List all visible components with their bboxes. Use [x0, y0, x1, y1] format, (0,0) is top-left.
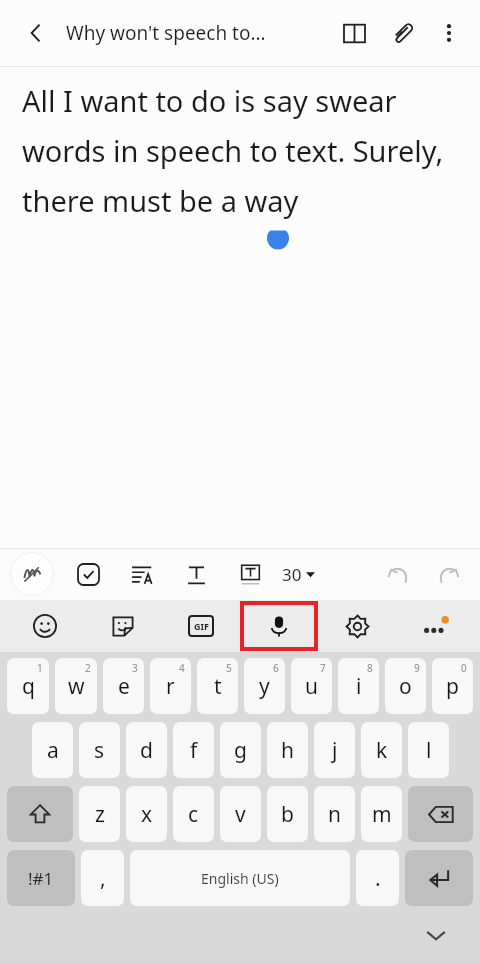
staticText: m — [372, 800, 392, 829]
button[interactable]: f — [173, 722, 214, 778]
staticText: g — [234, 736, 247, 765]
button[interactable]: z — [79, 786, 120, 842]
button[interactable]: Stickers — [84, 600, 162, 652]
staticText: h — [281, 736, 294, 765]
staticText: i — [356, 672, 362, 701]
staticText: 6 — [273, 661, 279, 675]
button[interactable]: x — [126, 786, 167, 842]
button[interactable]: More keyboard options — [396, 600, 474, 652]
button[interactable]: o — [385, 658, 426, 714]
staticText: 30 — [282, 563, 302, 586]
staticText: y — [259, 672, 270, 701]
staticText: 2 — [85, 661, 91, 675]
staticText: 9 — [414, 661, 420, 675]
staticText: e — [118, 672, 130, 701]
button[interactable]: a — [32, 722, 73, 778]
button[interactable]: Redo — [428, 554, 468, 594]
button[interactable]: !#1 — [7, 850, 75, 906]
button[interactable]: Text box — [230, 554, 270, 594]
button[interactable]: Undo — [378, 554, 418, 594]
staticText: u — [305, 672, 318, 701]
staticText: t — [214, 672, 222, 701]
button[interactable]: l — [408, 722, 449, 778]
button[interactable]: b — [267, 786, 308, 842]
button[interactable]: Shift — [7, 786, 73, 842]
button[interactable]: y — [244, 658, 285, 714]
button[interactable]: q — [7, 658, 49, 714]
staticText: s — [94, 736, 105, 765]
button[interactable]: h — [267, 722, 308, 778]
button[interactable]: w — [55, 658, 97, 714]
staticText: j — [332, 736, 338, 765]
staticText: 4 — [179, 661, 185, 675]
staticText: f — [190, 736, 198, 765]
button[interactable]: 30 — [276, 552, 321, 596]
staticText: q — [22, 672, 35, 701]
staticText: 0 — [461, 661, 467, 675]
button[interactable]: n — [314, 786, 355, 842]
staticText: All I want to do is say swear words in s… — [22, 81, 446, 221]
staticText: w — [68, 672, 85, 701]
button[interactable]: s — [79, 722, 120, 778]
staticText: o — [399, 672, 412, 701]
button[interactable]: Voice input — [240, 601, 318, 651]
button[interactable]: Paragraph style — [122, 554, 162, 594]
staticText: . — [375, 864, 381, 893]
staticText: b — [281, 800, 294, 829]
staticText: 7 — [320, 661, 326, 675]
button[interactable]: g — [220, 722, 261, 778]
button[interactable]: i — [338, 658, 379, 714]
staticText: !#1 — [28, 867, 54, 890]
button[interactable]: Backspace — [408, 786, 473, 842]
staticText: x — [141, 800, 153, 829]
staticText: l — [426, 736, 432, 765]
button[interactable]: Checklist — [68, 554, 108, 594]
staticText: p — [446, 672, 459, 701]
staticText: r — [166, 672, 175, 701]
button[interactable]: Enter — [405, 850, 473, 906]
staticText: , — [100, 864, 106, 893]
button[interactable]: English (US) — [130, 850, 350, 906]
button[interactable]: Reading view — [330, 9, 378, 57]
button[interactable]: c — [173, 786, 214, 842]
button[interactable]: Handwriting — [10, 552, 54, 596]
button[interactable]: . — [356, 850, 399, 906]
staticText: a — [47, 736, 59, 765]
staticText: z — [95, 800, 105, 829]
button[interactable]: m — [361, 786, 402, 842]
staticText: v — [235, 800, 246, 829]
button[interactable]: Attach — [378, 9, 426, 57]
button[interactable]: r — [150, 658, 191, 714]
button[interactable]: Emoji — [6, 600, 84, 652]
button[interactable]: v — [220, 786, 261, 842]
staticText: n — [328, 800, 341, 829]
staticText: English (US) — [201, 869, 279, 888]
button[interactable]: e — [103, 658, 144, 714]
button[interactable]: Back — [14, 11, 58, 55]
button[interactable]: More options — [426, 10, 472, 56]
button[interactable]: p — [432, 658, 473, 714]
button[interactable]: Hide keyboard — [416, 915, 456, 955]
staticText: 3 — [132, 661, 138, 675]
staticText: c — [188, 800, 199, 829]
button[interactable]: d — [126, 722, 167, 778]
staticText: 5 — [226, 661, 232, 675]
staticText: 1 — [37, 661, 43, 675]
staticText: d — [140, 736, 153, 765]
button[interactable]: Settings — [318, 600, 396, 652]
staticText: GIF — [194, 620, 209, 632]
button[interactable]: t — [197, 658, 238, 714]
button[interactable]: k — [361, 722, 402, 778]
staticText: 8 — [367, 661, 373, 675]
staticText: k — [376, 736, 388, 765]
button[interactable]: GIF — [162, 600, 240, 652]
button[interactable]: , — [81, 850, 124, 906]
button[interactable]: Text style — [176, 554, 216, 594]
staticText: Why won't speech to… — [66, 20, 266, 46]
button[interactable]: j — [314, 722, 355, 778]
button[interactable]: u — [291, 658, 332, 714]
